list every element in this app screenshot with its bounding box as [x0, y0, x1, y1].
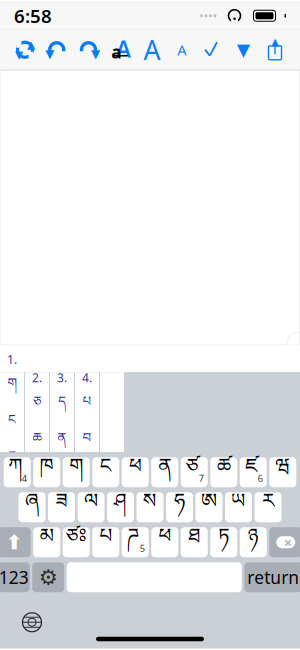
button[interactable]: ཤ [107, 492, 134, 522]
button[interactable]: Smaller text [173, 39, 191, 61]
staticText: 7 [199, 472, 204, 484]
staticText: ཉ [248, 514, 259, 569]
button[interactable]: ཨ [195, 492, 222, 522]
staticText: ར [8, 441, 16, 478]
button[interactable]: Space [67, 562, 242, 592]
staticText: ང [100, 444, 112, 499]
staticText: 6 [258, 472, 263, 484]
staticText: མ [40, 514, 54, 569]
staticText: ན [57, 423, 66, 460]
staticText: 123 [0, 566, 29, 589]
button[interactable]: ཏ [210, 527, 237, 557]
staticText: ད [58, 387, 66, 423]
staticText: ཟ [55, 479, 67, 534]
button[interactable]: ཌ [122, 527, 149, 557]
staticText: 6:58 [14, 3, 52, 28]
staticText: ཙ [186, 444, 199, 499]
button[interactable]: པ [92, 527, 119, 557]
button[interactable]: Done [200, 39, 222, 61]
button[interactable]: ཝ [269, 457, 296, 487]
button[interactable]: ཡ [225, 492, 252, 522]
button[interactable]: ཙཿ [63, 527, 90, 557]
staticText: 5 [140, 542, 145, 554]
button[interactable]: 2. [25, 372, 49, 452]
button[interactable]: Undo [46, 39, 68, 61]
button[interactable]: More [232, 39, 254, 61]
button[interactable]: ན [151, 457, 178, 487]
button[interactable]: Larger text [141, 39, 163, 61]
button[interactable]: ཐ [181, 527, 208, 557]
staticText: ཐ [188, 514, 200, 569]
button[interactable]: ལ [77, 492, 104, 522]
staticText: 2. [32, 370, 42, 386]
button[interactable]: ཧ [166, 492, 193, 522]
button[interactable]: ག [63, 457, 90, 487]
staticText: 1. [7, 351, 17, 367]
button[interactable]: ང [92, 457, 119, 487]
button[interactable]: Share [264, 39, 286, 61]
staticText: a [111, 40, 121, 63]
staticText: A [116, 34, 131, 64]
button[interactable]: Return [244, 562, 300, 592]
staticText: ར [262, 479, 274, 534]
staticText: ཀ [8, 444, 22, 499]
button[interactable]: 4. [75, 372, 99, 452]
button[interactable]: ཕ [151, 527, 178, 557]
button[interactable]: Next keyboard [20, 610, 44, 634]
button[interactable]: ཞ [18, 492, 45, 522]
button[interactable]: Delete [269, 527, 300, 557]
button[interactable]: ཀ [4, 457, 31, 487]
button[interactable]: ཙ [181, 457, 208, 487]
staticText: ཝ [275, 444, 290, 499]
button[interactable]: ཁ [33, 457, 60, 487]
staticText: པ [82, 387, 91, 423]
staticText: ས [143, 479, 157, 534]
staticText: ཕ [129, 444, 142, 499]
staticText: 4 [22, 472, 27, 484]
staticText: 3. [57, 370, 67, 386]
button[interactable]: Redo [77, 39, 99, 61]
staticText: ཧ [174, 479, 185, 534]
button[interactable]: 1. [0, 372, 24, 452]
staticText: པ [99, 514, 112, 569]
staticText: ཅ [33, 387, 41, 423]
button[interactable]: Keyboard settings [32, 562, 64, 592]
staticText: ཆ [32, 423, 41, 460]
staticText: ཙཿ [66, 514, 87, 569]
staticText: ཡ [231, 479, 246, 534]
staticText: ▼ [237, 40, 250, 60]
staticText: ཏ [218, 514, 229, 569]
staticText: ▼ [45, 47, 54, 60]
button[interactable]: ཉ [240, 527, 267, 557]
button[interactable]: Clear formatting [109, 39, 131, 61]
button[interactable]: ཛ [240, 457, 267, 487]
staticText: ▲ [27, 39, 35, 51]
staticText: ཕ [158, 514, 171, 569]
staticText: ⬆ [6, 531, 23, 554]
staticText: ⚙ [39, 565, 58, 589]
staticText: ཌ [127, 514, 139, 569]
staticText: return [247, 566, 299, 589]
button[interactable]: ར [254, 492, 281, 522]
button[interactable]: ཟ [48, 492, 75, 522]
staticText: ཚ [217, 444, 231, 499]
button[interactable]: Shift [0, 527, 31, 557]
staticText: ▲ [271, 36, 279, 48]
staticText: ག [7, 368, 16, 405]
staticText: བ [82, 423, 91, 460]
staticText: ཞ [25, 479, 39, 534]
staticText: ▼ [91, 47, 100, 60]
staticText: ལ [84, 479, 98, 534]
staticText: ཁ [40, 444, 54, 499]
button[interactable]: 3. [50, 372, 74, 452]
staticText: ▼ [15, 49, 23, 61]
staticText: ང [8, 405, 16, 441]
button[interactable]: ཕ [122, 457, 149, 487]
button[interactable]: Numbers [0, 562, 30, 592]
button[interactable]: Refresh [14, 39, 36, 61]
button[interactable]: མ [33, 527, 60, 557]
staticText: ཛ [245, 444, 257, 499]
staticText: ག [69, 444, 83, 499]
button[interactable]: ས [136, 492, 163, 522]
button[interactable]: ཚ [210, 457, 237, 487]
